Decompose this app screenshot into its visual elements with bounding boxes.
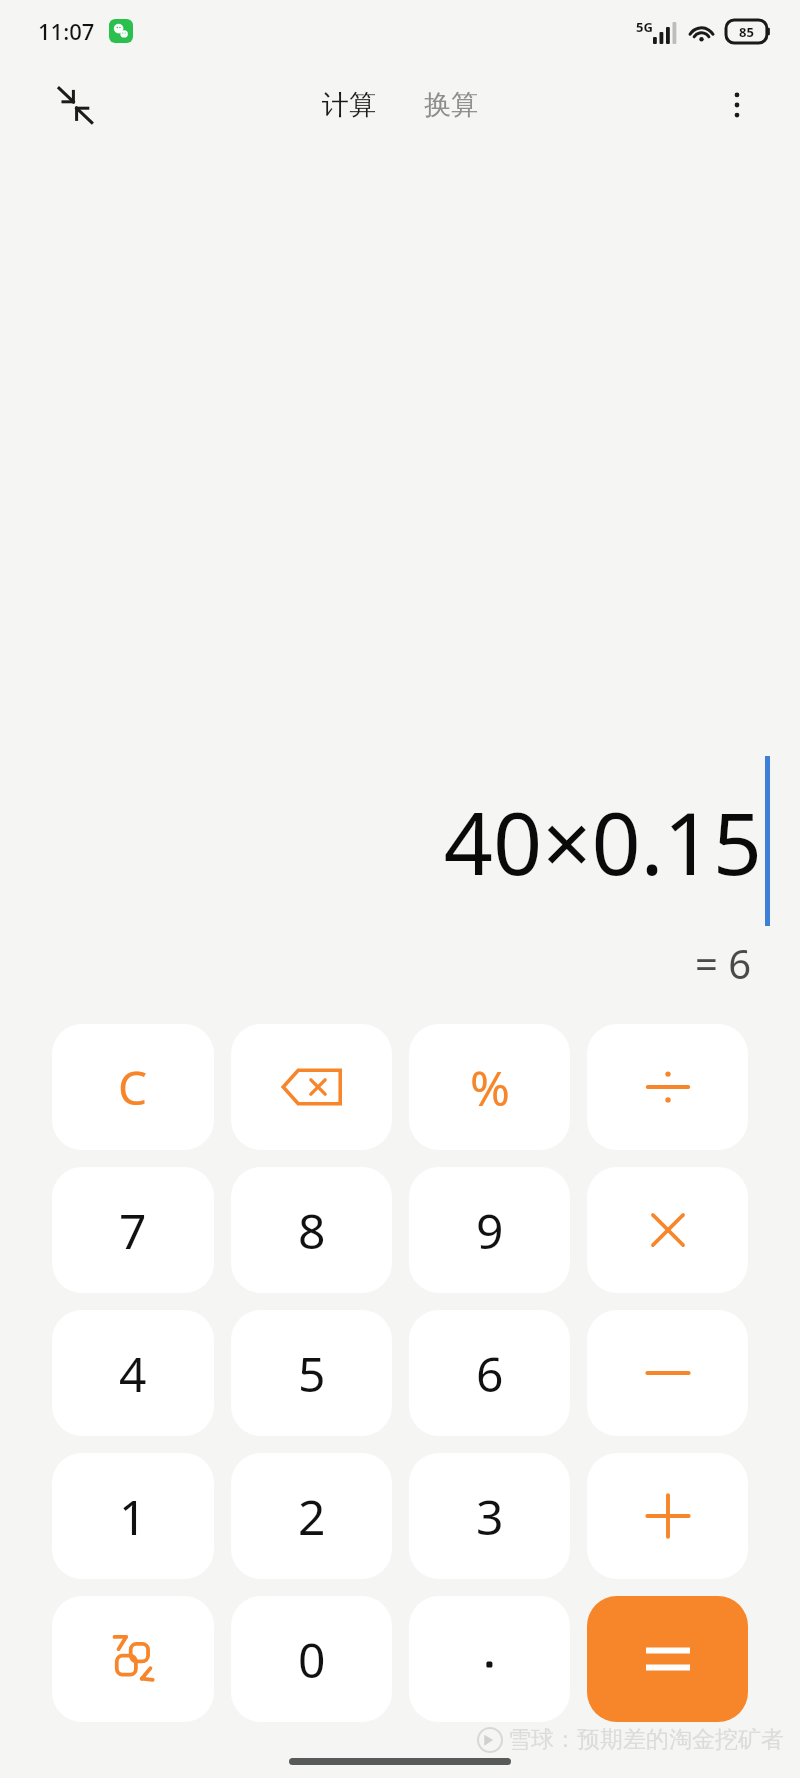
button[interactable]: C bbox=[52, 1024, 214, 1150]
button[interactable] bbox=[587, 1596, 748, 1722]
button[interactable]: Backspace bbox=[231, 1024, 392, 1150]
button[interactable] bbox=[587, 1310, 748, 1436]
staticText: 85 bbox=[739, 23, 754, 41]
button[interactable]: 0 bbox=[231, 1596, 392, 1722]
button[interactable] bbox=[587, 1167, 748, 1293]
button[interactable]: 5 bbox=[231, 1310, 392, 1436]
button[interactable]: Collapse bbox=[40, 70, 110, 140]
staticText: C bbox=[118, 1056, 148, 1119]
button[interactable]: 7 bbox=[52, 1167, 214, 1293]
staticText: 9 bbox=[476, 1198, 504, 1263]
staticText: 1 bbox=[119, 1484, 147, 1549]
staticText: = 6 bbox=[695, 936, 752, 990]
button[interactable]: More options bbox=[706, 74, 768, 136]
staticText: 4 bbox=[119, 1341, 147, 1406]
button[interactable]: % bbox=[409, 1024, 570, 1150]
staticText: 5G bbox=[636, 18, 653, 36]
button[interactable]: 计算 bbox=[314, 82, 384, 128]
button[interactable]: 9 bbox=[409, 1167, 570, 1293]
staticText: 5 bbox=[298, 1341, 326, 1406]
staticText: 雪球：预期差的淘金挖矿者 bbox=[508, 1725, 784, 1754]
button[interactable] bbox=[587, 1453, 748, 1579]
staticText: 11:07 bbox=[38, 16, 95, 46]
button[interactable]: 3 bbox=[409, 1453, 570, 1579]
staticText: 计算 bbox=[322, 88, 376, 122]
button[interactable]: 1 bbox=[52, 1453, 214, 1579]
staticText: 40×0.15 bbox=[443, 783, 762, 900]
button[interactable]: 4 bbox=[52, 1310, 214, 1436]
button[interactable]: 8 bbox=[231, 1167, 392, 1293]
button[interactable]: 2 bbox=[231, 1453, 392, 1579]
staticText: 0 bbox=[298, 1627, 326, 1692]
staticText: 7 bbox=[119, 1198, 147, 1263]
staticText: 2 bbox=[298, 1484, 326, 1549]
staticText: 换算 bbox=[424, 88, 478, 122]
button[interactable] bbox=[587, 1024, 748, 1150]
staticText: % bbox=[470, 1055, 510, 1120]
button[interactable]: 6 bbox=[409, 1310, 570, 1436]
staticText: 8 bbox=[298, 1198, 326, 1263]
button[interactable]: 换算 bbox=[416, 82, 486, 128]
button[interactable] bbox=[409, 1596, 570, 1722]
staticText: 3 bbox=[476, 1484, 504, 1549]
staticText: 6 bbox=[476, 1341, 504, 1406]
button[interactable]: Handwriting input bbox=[52, 1596, 214, 1722]
